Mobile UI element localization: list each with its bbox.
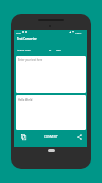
staticText: 100% [75, 31, 82, 34]
button[interactable]: Enter your text here [16, 56, 86, 93]
staticText: to [49, 48, 52, 51]
staticText: Text [56, 48, 61, 51]
staticText: Enter your text here [18, 58, 43, 62]
button[interactable]: to [49, 48, 52, 51]
button[interactable]: CONVERT [44, 135, 58, 139]
button[interactable]: Hello World [16, 95, 86, 130]
staticText: 9:30 [16, 31, 21, 34]
button[interactable]: Morse Code [17, 48, 31, 51]
button[interactable]: Share [77, 134, 82, 140]
button[interactable]: Copy [21, 134, 26, 140]
staticText: Morse Code [17, 48, 31, 51]
staticText: CONVERT [44, 135, 58, 139]
button[interactable]: Text [56, 48, 61, 51]
staticText: Hello World [18, 98, 33, 102]
button[interactable]: Text Converter [17, 37, 37, 41]
staticText: Text Converter [17, 37, 37, 41]
